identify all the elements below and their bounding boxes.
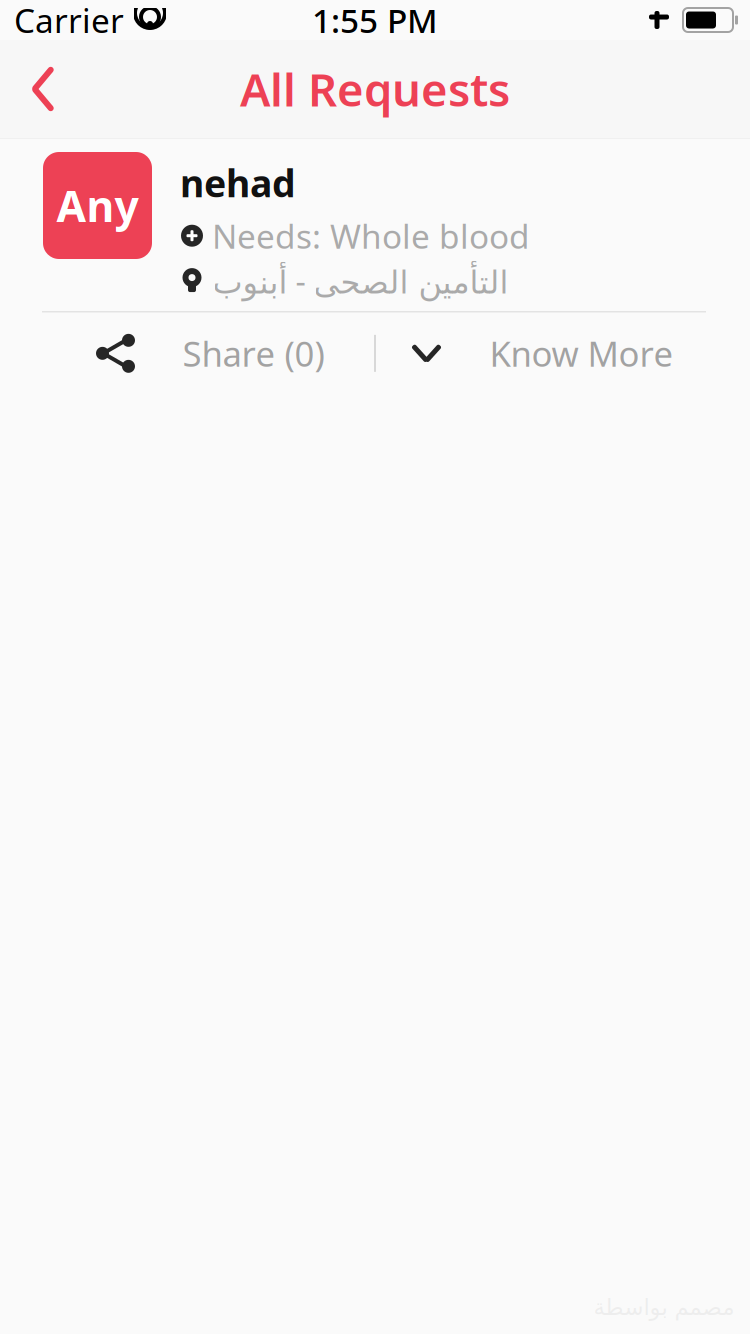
button[interactable]: Share (0) xyxy=(44,323,374,383)
staticText: مصمم بواسطة xyxy=(593,1294,734,1320)
staticText: 1:55 PM xyxy=(312,0,438,42)
button[interactable]: Any xyxy=(0,139,750,383)
staticText: Share (0) xyxy=(182,330,324,376)
staticText: التأمين الصحى - أبنوب xyxy=(212,260,508,302)
button[interactable]: Know More xyxy=(376,323,706,383)
button[interactable]: Back xyxy=(8,54,78,124)
staticText: Know More xyxy=(489,330,673,376)
staticText: Any xyxy=(56,177,138,234)
staticText: All Requests xyxy=(240,59,510,119)
staticText: Needs: Whole blood xyxy=(212,214,530,258)
staticText: nehad xyxy=(180,158,296,208)
staticText: Carrier xyxy=(14,0,124,42)
